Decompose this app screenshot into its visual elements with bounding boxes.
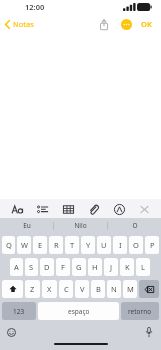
staticText: G — [76, 262, 82, 272]
staticText: OK — [141, 19, 152, 29]
staticText: O — [133, 240, 139, 250]
button[interactable]: 123 — [2, 302, 36, 320]
button[interactable]: T — [65, 236, 79, 254]
button[interactable]: X — [42, 280, 57, 298]
button[interactable]: U — [97, 236, 111, 254]
staticText: O — [132, 221, 138, 230]
staticText: M — [127, 284, 134, 294]
button[interactable]: V — [75, 280, 89, 298]
button[interactable]: S — [25, 258, 38, 276]
button[interactable]: More — [117, 15, 135, 33]
button[interactable]: Close — [135, 200, 153, 218]
staticText: W — [21, 240, 28, 250]
button[interactable]: Markup — [110, 200, 128, 218]
button[interactable]: F — [56, 258, 70, 276]
staticText: Nilo — [74, 221, 87, 230]
staticText: Q — [6, 240, 12, 250]
staticText: E — [38, 240, 43, 250]
button[interactable]: J — [104, 258, 118, 276]
button[interactable]: Nilo — [54, 218, 107, 233]
button[interactable]: P — [145, 236, 159, 254]
button[interactable]: Attach — [84, 200, 102, 218]
staticText: Z — [30, 284, 35, 294]
button[interactable]: L — [136, 258, 150, 276]
staticText: X — [47, 284, 52, 294]
staticText: espaço — [68, 307, 90, 316]
button[interactable]: Notas — [0, 16, 40, 32]
button[interactable]: espaço — [38, 302, 119, 320]
button[interactable]: retorno — [121, 302, 159, 320]
button[interactable]: List — [33, 200, 51, 218]
button[interactable]: A — [10, 258, 23, 276]
staticText: 123 — [13, 307, 25, 316]
button[interactable]: N — [107, 280, 121, 298]
button[interactable]: I — [113, 236, 127, 254]
staticText: C — [64, 284, 69, 294]
button[interactable]: O — [108, 218, 161, 233]
button[interactable]: D — [40, 258, 54, 276]
button[interactable]: C — [59, 280, 73, 298]
button[interactable]: Emoji — [4, 325, 18, 339]
staticText: F — [61, 262, 65, 272]
button[interactable]: Eu — [0, 218, 53, 233]
button[interactable]: Z — [25, 280, 40, 298]
staticText: K — [125, 262, 130, 272]
staticText: T — [70, 240, 75, 250]
staticText: retorno — [128, 307, 152, 316]
button[interactable]: K — [120, 258, 134, 276]
staticText: L — [141, 262, 145, 272]
button[interactable]: G — [72, 258, 86, 276]
staticText: Eu — [23, 221, 31, 230]
staticText: B — [96, 284, 101, 294]
button[interactable]: Text format — [8, 200, 26, 218]
staticText: D — [44, 262, 50, 272]
staticText: 12:00 — [25, 2, 45, 12]
button[interactable]: M — [123, 280, 137, 298]
button[interactable]: E — [33, 236, 47, 254]
staticText: I — [119, 240, 122, 250]
button[interactable]: Table — [59, 200, 77, 218]
staticText: H — [92, 262, 98, 272]
button[interactable]: Y — [81, 236, 95, 254]
staticText: J — [110, 262, 113, 272]
staticText: Notas — [13, 19, 34, 29]
button[interactable]: Q — [2, 236, 15, 254]
staticText: S — [29, 262, 34, 272]
staticText: P — [150, 240, 155, 250]
button[interactable]: OK — [138, 16, 155, 32]
button[interactable]: O — [129, 236, 143, 254]
button[interactable]: Shift — [2, 280, 23, 298]
staticText: R — [54, 240, 59, 250]
staticText: N — [111, 284, 117, 294]
button[interactable]: Share — [95, 15, 113, 33]
button[interactable]: B — [91, 280, 105, 298]
button[interactable]: H — [88, 258, 102, 276]
staticText: Y — [86, 240, 91, 250]
staticText: U — [101, 240, 107, 250]
button[interactable]: Dictate — [142, 325, 156, 339]
button[interactable]: W — [17, 236, 31, 254]
button[interactable]: R — [49, 236, 63, 254]
staticText: V — [80, 284, 85, 294]
staticText: A — [14, 262, 19, 272]
button[interactable]: Backspace — [139, 280, 159, 298]
